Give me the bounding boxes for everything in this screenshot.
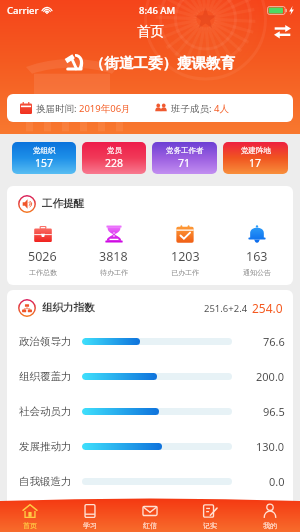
staticText: 71 [178, 156, 191, 170]
staticText: 待办工作 [100, 268, 128, 277]
button[interactable]: 班子成员: [155, 94, 293, 122]
button[interactable]: 党建阵地 [223, 142, 288, 174]
staticText: 0.0 [269, 474, 285, 489]
staticText: Carrier [7, 4, 39, 17]
staticText: 红信 [143, 521, 157, 530]
staticText: 工作提醒 [42, 197, 84, 210]
staticText: 254.0 [252, 300, 283, 316]
button[interactable]: 5026 [7, 225, 78, 277]
staticText: 首页 [137, 23, 164, 40]
staticText: 学习 [83, 521, 97, 530]
button[interactable]: 我的 [240, 501, 300, 532]
button[interactable]: 学习 [60, 501, 120, 532]
button[interactable]: 首页 [0, 501, 60, 532]
staticText: 200.0 [256, 369, 285, 384]
staticText: 换届时间: [36, 102, 77, 115]
staticText: 76.6 [263, 334, 285, 349]
staticText: 首页 [23, 521, 37, 530]
button[interactable]: 红信 [120, 501, 180, 532]
button[interactable]: 记实 [180, 501, 240, 532]
staticText: 党组织 [33, 146, 56, 155]
staticText: 工作总数 [29, 268, 57, 277]
staticText: 228 [105, 156, 124, 170]
staticText: （街道工委）瘦课教育 [90, 54, 235, 72]
staticText: 157 [35, 156, 54, 170]
staticText: 130.0 [256, 439, 285, 454]
staticText: 政治领导力 [19, 335, 72, 348]
staticText: 163 [246, 248, 268, 265]
staticText: 251.6+2.4 [204, 302, 248, 315]
staticText: 党员 [107, 146, 122, 155]
staticText: 组织覆盖力 [19, 370, 72, 383]
staticText: 发展推动力 [19, 440, 72, 453]
staticText: 通知公告 [243, 268, 271, 277]
staticText: 班子成员: [171, 102, 212, 115]
button[interactable]: 3818 [78, 225, 149, 277]
button[interactable]: 党员 [82, 142, 146, 174]
staticText: 我的 [263, 521, 277, 530]
staticText: 5026 [28, 248, 57, 265]
staticText: 党建阵地 [241, 146, 271, 155]
button[interactable]: 163 [221, 225, 293, 277]
button[interactable]: 1203 [149, 225, 221, 277]
staticText: 2019年06月 [79, 102, 131, 115]
staticText: 党务工作者 [166, 146, 204, 155]
button[interactable]: 换届时间: [20, 94, 155, 122]
staticText: 1203 [171, 248, 200, 265]
staticText: 记实 [203, 521, 217, 530]
staticText: 已办工作 [171, 268, 199, 277]
staticText: 3818 [99, 248, 128, 265]
staticText: 自我锻造力 [19, 475, 72, 488]
staticText: 96.5 [263, 404, 285, 419]
button[interactable]: 党组织 [12, 142, 76, 174]
button[interactable]: 切换组织 [271, 20, 293, 42]
button[interactable]: 党务工作者 [152, 142, 217, 174]
staticText: 社会动员力 [19, 405, 72, 418]
staticText: 组织力指数 [42, 301, 95, 314]
staticText: 8:46 AM [139, 4, 176, 17]
staticText: 4人 [214, 102, 229, 115]
staticText: 17 [249, 156, 262, 170]
